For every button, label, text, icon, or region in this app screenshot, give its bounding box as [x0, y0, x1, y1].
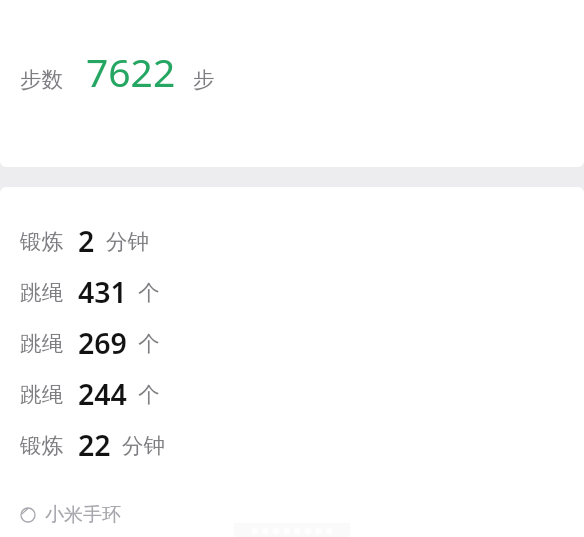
- staticText: 个: [138, 279, 160, 306]
- staticText: 跳绳: [20, 330, 63, 357]
- staticText: 2: [78, 222, 95, 261]
- staticText: 个: [138, 381, 160, 408]
- button[interactable]: 锻炼: [0, 216, 584, 267]
- staticText: 跳绳: [20, 279, 63, 306]
- staticText: 跳绳: [20, 381, 63, 408]
- staticText: 小米手环: [45, 503, 121, 527]
- staticText: 锻炼: [20, 228, 63, 255]
- staticText: 244: [78, 375, 127, 414]
- button[interactable]: 跳绳: [0, 318, 584, 369]
- button[interactable]: 锻炼: [0, 420, 584, 471]
- staticText: 分钟: [106, 228, 149, 255]
- staticText: 分钟: [122, 432, 165, 459]
- staticText: 步数: [20, 66, 63, 93]
- staticText: 步: [193, 66, 215, 93]
- button[interactable]: 跳绳: [0, 267, 584, 318]
- button[interactable]: 步数: [0, 0, 584, 167]
- staticText: 431: [78, 273, 127, 312]
- staticText: 锻炼: [20, 432, 63, 459]
- staticText: 22: [78, 426, 111, 465]
- staticText: 7622: [86, 45, 176, 98]
- staticText: 个: [138, 330, 160, 357]
- other: Data source: Mi Band: [20, 507, 36, 523]
- staticText: 269: [78, 324, 127, 363]
- button[interactable]: Data source: Mi Band: [0, 500, 584, 530]
- button[interactable]: 跳绳: [0, 369, 584, 420]
